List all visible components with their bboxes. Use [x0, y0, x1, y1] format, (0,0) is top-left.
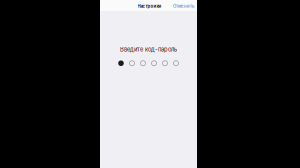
staticText: Введите код-пароль	[120, 46, 177, 53]
button[interactable]: Отменить	[173, 0, 197, 9]
staticText: Отменить	[173, 3, 194, 9]
staticText: Настройки	[137, 3, 161, 9]
